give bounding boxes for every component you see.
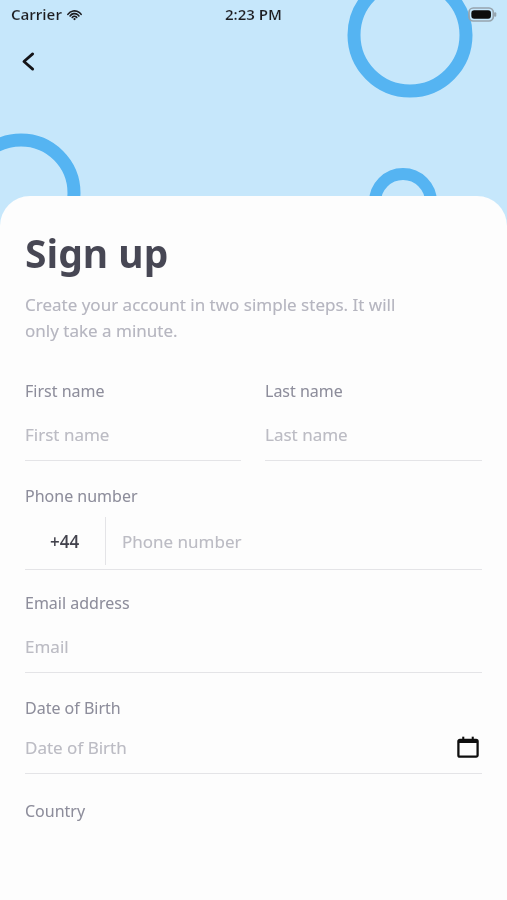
button[interactable]: First name bbox=[25, 380, 241, 461]
staticText: Create your account in two simple steps.… bbox=[25, 293, 396, 342]
staticText: First name bbox=[25, 380, 105, 402]
staticText: Date of Birth bbox=[25, 697, 121, 719]
staticText: Phone number bbox=[25, 485, 138, 507]
staticText: Phone number bbox=[122, 530, 242, 553]
button[interactable]: Pick date bbox=[454, 733, 482, 761]
staticText: 2:23 PM bbox=[225, 4, 282, 24]
staticText: Email address bbox=[25, 592, 130, 614]
staticText: Country bbox=[25, 800, 86, 822]
staticText: Last name bbox=[265, 423, 348, 446]
button[interactable]: Date of Birth bbox=[25, 697, 482, 774]
staticText: Carrier bbox=[11, 4, 62, 24]
button[interactable]: Last name bbox=[265, 380, 482, 461]
staticText: Sign up bbox=[25, 226, 169, 279]
button[interactable]: Country bbox=[25, 800, 482, 822]
button[interactable]: Email address bbox=[25, 592, 482, 673]
staticText: +44 bbox=[50, 530, 80, 553]
button[interactable]: Back bbox=[6, 39, 50, 83]
staticText: Last name bbox=[265, 380, 343, 402]
staticText: First name bbox=[25, 423, 110, 446]
staticText: Date of Birth bbox=[25, 736, 127, 759]
staticText: Email bbox=[25, 635, 69, 658]
button[interactable]: Phone number bbox=[25, 485, 482, 570]
